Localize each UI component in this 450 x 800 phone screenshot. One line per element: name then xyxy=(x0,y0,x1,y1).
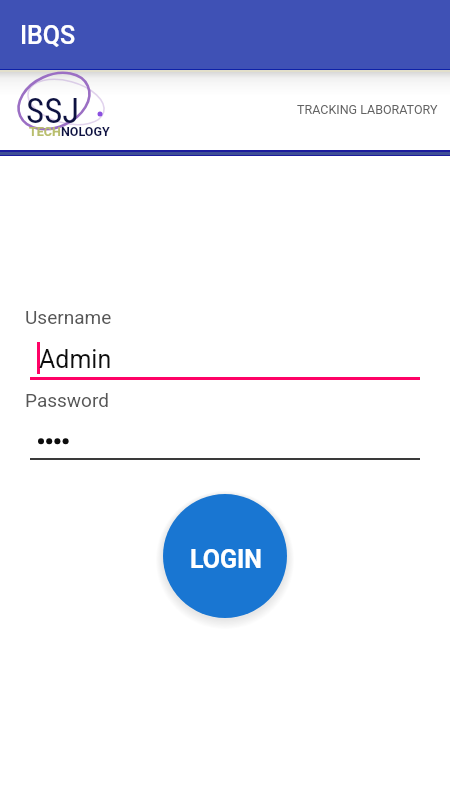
staticText: Admin xyxy=(39,345,112,374)
button[interactable] xyxy=(30,425,420,460)
staticText: Username xyxy=(25,306,112,328)
staticText: Password xyxy=(25,389,109,411)
button[interactable]: IBQS xyxy=(0,0,450,69)
button[interactable]: LOGIN xyxy=(163,494,287,618)
staticText: NOLOGY xyxy=(61,124,110,139)
staticText: TECH xyxy=(29,124,61,139)
staticText: TRACKING LABORATORY xyxy=(297,102,438,117)
button[interactable]: Admin xyxy=(30,340,420,380)
staticText: IBQS xyxy=(20,21,76,50)
staticText: SSJ xyxy=(26,91,80,132)
staticText: LOGIN xyxy=(190,545,262,574)
